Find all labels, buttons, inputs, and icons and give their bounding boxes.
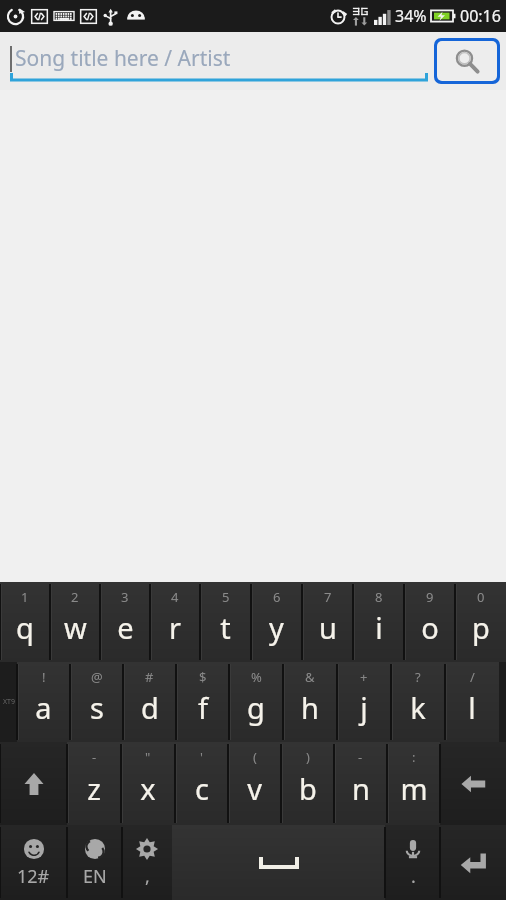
button[interactable]: $ [176, 662, 229, 742]
button[interactable]: - [67, 742, 121, 825]
staticText: w [64, 608, 87, 647]
button[interactable]: ? [391, 662, 445, 742]
staticText: t [220, 608, 231, 647]
staticText: / [470, 668, 475, 686]
staticText: j [360, 688, 368, 727]
staticText: d [141, 688, 159, 727]
button[interactable]: 0 [455, 582, 506, 662]
staticText: n [352, 769, 370, 808]
button[interactable]: & [283, 662, 337, 742]
staticText: i [375, 608, 383, 647]
staticText: ( [253, 748, 257, 766]
button[interactable]: - [334, 742, 387, 825]
staticText: 34% [395, 5, 427, 27]
button[interactable]: # [123, 662, 176, 742]
staticText: l [468, 688, 476, 727]
staticText: u [319, 608, 337, 647]
staticText: q [16, 608, 34, 647]
button[interactable]: ' [175, 742, 228, 825]
staticText: e [117, 608, 134, 647]
button[interactable]: / [445, 662, 499, 742]
staticText: m [400, 769, 428, 808]
button[interactable]: Voice input [385, 825, 440, 900]
staticText: # [145, 668, 154, 686]
button[interactable]: Shift [0, 742, 67, 825]
staticText: s [90, 688, 104, 727]
button[interactable]: 7 [302, 582, 353, 662]
staticText: & [305, 668, 315, 686]
staticText: r [169, 608, 181, 647]
staticText: " [145, 748, 151, 766]
button[interactable]: 3 [100, 582, 150, 662]
button[interactable]: 6 [251, 582, 302, 662]
button[interactable]: 4 [150, 582, 200, 662]
staticText: + [360, 668, 368, 686]
staticText: 0 [477, 588, 485, 606]
staticText: EN [83, 864, 107, 889]
staticText: ! [42, 668, 46, 686]
staticText: b [299, 769, 317, 808]
staticText: Song title here / Artist [15, 44, 231, 73]
button[interactable]: + [337, 662, 391, 742]
staticText: , [145, 864, 150, 889]
staticText: f [198, 688, 208, 727]
staticText: 12# [17, 864, 50, 889]
button[interactable]: 1 [0, 582, 50, 662]
staticText: 9 [426, 588, 434, 606]
button[interactable]: 5 [200, 582, 251, 662]
staticText: - [358, 748, 363, 766]
staticText: c [195, 769, 209, 808]
button[interactable]: ( [228, 742, 281, 825]
button[interactable]: % [229, 662, 283, 742]
staticText: 3 [121, 588, 129, 606]
button[interactable]: : [387, 742, 440, 825]
button[interactable]: @ [70, 662, 123, 742]
staticText: 5 [222, 588, 230, 606]
button[interactable]: 8 [353, 582, 404, 662]
staticText: ? [415, 668, 421, 686]
staticText: : [412, 748, 416, 766]
staticText: ) [306, 748, 310, 766]
button[interactable]: Emoji and symbols [0, 825, 67, 900]
staticText: x [140, 769, 156, 808]
staticText: % [251, 668, 262, 686]
button[interactable]: ! [17, 662, 70, 742]
staticText: 7 [324, 588, 332, 606]
staticText: o [421, 608, 439, 647]
button[interactable]: ) [281, 742, 334, 825]
staticText: z [87, 769, 101, 808]
staticText: v [247, 769, 262, 808]
button[interactable]: " [121, 742, 175, 825]
staticText: p [472, 608, 490, 647]
staticText: ' [200, 748, 203, 766]
staticText: a [35, 688, 52, 727]
staticText: XT9 [3, 697, 15, 707]
staticText: y [269, 608, 284, 647]
staticText: h [301, 688, 319, 727]
button[interactable]: Song title here / Artist [10, 39, 428, 83]
staticText: 2 [71, 588, 79, 606]
staticText: k [410, 688, 426, 727]
staticText: g [247, 688, 265, 727]
staticText: 8 [375, 588, 383, 606]
button[interactable]: Language [67, 825, 122, 900]
staticText: 4 [171, 588, 179, 606]
button[interactable]: Backspace [440, 742, 506, 825]
staticText: 1 [21, 588, 29, 606]
button[interactable]: Settings [122, 825, 172, 900]
staticText: $ [199, 668, 207, 686]
button[interactable]: Space [172, 825, 385, 900]
staticText: - [92, 748, 97, 766]
staticText: 6 [273, 588, 281, 606]
staticText: 00:16 [460, 5, 501, 27]
button[interactable]: Enter [440, 825, 506, 900]
staticText: @ [91, 668, 103, 686]
staticText: . [411, 864, 416, 889]
button[interactable]: 9 [404, 582, 455, 662]
button[interactable]: 2 [50, 582, 100, 662]
button[interactable]: Search [437, 41, 497, 81]
